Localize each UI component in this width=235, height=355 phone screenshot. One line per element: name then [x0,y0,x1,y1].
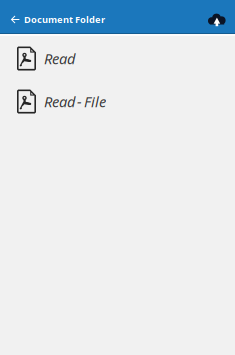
button[interactable]: Upload [208,0,235,33]
staticText: Read [44,49,75,68]
button[interactable]: Document Folder [0,0,105,33]
staticText: Document Folder [24,13,105,26]
staticText: Read - File [44,92,106,111]
button[interactable]: Read - File [0,80,235,123]
button[interactable]: Read [0,37,235,80]
